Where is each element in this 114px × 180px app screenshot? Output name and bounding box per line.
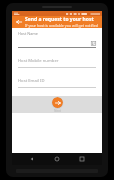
staticText: Send a request to your host bbox=[25, 16, 94, 23]
staticText: Host Mobile number bbox=[18, 58, 59, 64]
button[interactable]: Recent apps bbox=[77, 154, 87, 164]
button[interactable]: Back bbox=[14, 17, 24, 27]
button[interactable]: Home bbox=[52, 154, 62, 164]
button[interactable]: Back bbox=[27, 154, 37, 164]
button[interactable]: Host Mobile number bbox=[18, 58, 96, 68]
button[interactable]: Host Email ID bbox=[18, 78, 96, 88]
button[interactable]: Host Name bbox=[18, 31, 96, 48]
button[interactable]: Pick contact bbox=[91, 41, 96, 46]
button[interactable]: Next bbox=[52, 97, 63, 108]
staticText: Host Name bbox=[18, 31, 38, 36]
staticText: Next bbox=[54, 109, 61, 113]
staticText: Host Email ID bbox=[18, 78, 45, 84]
staticText: If your host is available you will get n… bbox=[25, 23, 98, 28]
